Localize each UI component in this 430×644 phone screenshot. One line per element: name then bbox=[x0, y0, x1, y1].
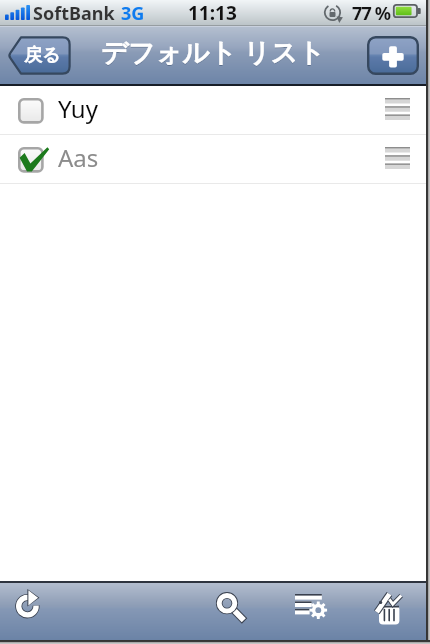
button[interactable]: Add item bbox=[367, 36, 419, 75]
staticText: 11:13 bbox=[188, 0, 237, 26]
staticText: Aas bbox=[58, 141, 99, 174]
staticText: デフォルト リスト bbox=[101, 34, 325, 70]
staticText: SoftBank bbox=[33, 1, 115, 26]
button[interactable]: Refresh bbox=[0, 583, 56, 640]
staticText: Yuy bbox=[58, 92, 98, 125]
button[interactable]: 戻る bbox=[7, 36, 71, 75]
button[interactable]: Aas bbox=[0, 135, 426, 183]
button[interactable]: Yuy bbox=[0, 86, 426, 134]
staticText: デフォルト リスト bbox=[101, 35, 325, 71]
button[interactable]: Search bbox=[203, 583, 260, 640]
staticText: 77 % bbox=[352, 1, 391, 26]
other: Reorder bbox=[385, 147, 410, 169]
staticText: 戻る bbox=[24, 44, 61, 67]
staticText: 3G bbox=[121, 1, 145, 26]
button[interactable]: List settings bbox=[284, 583, 340, 640]
button[interactable]: Delete completed bbox=[362, 583, 416, 640]
other: Reorder bbox=[385, 98, 410, 120]
